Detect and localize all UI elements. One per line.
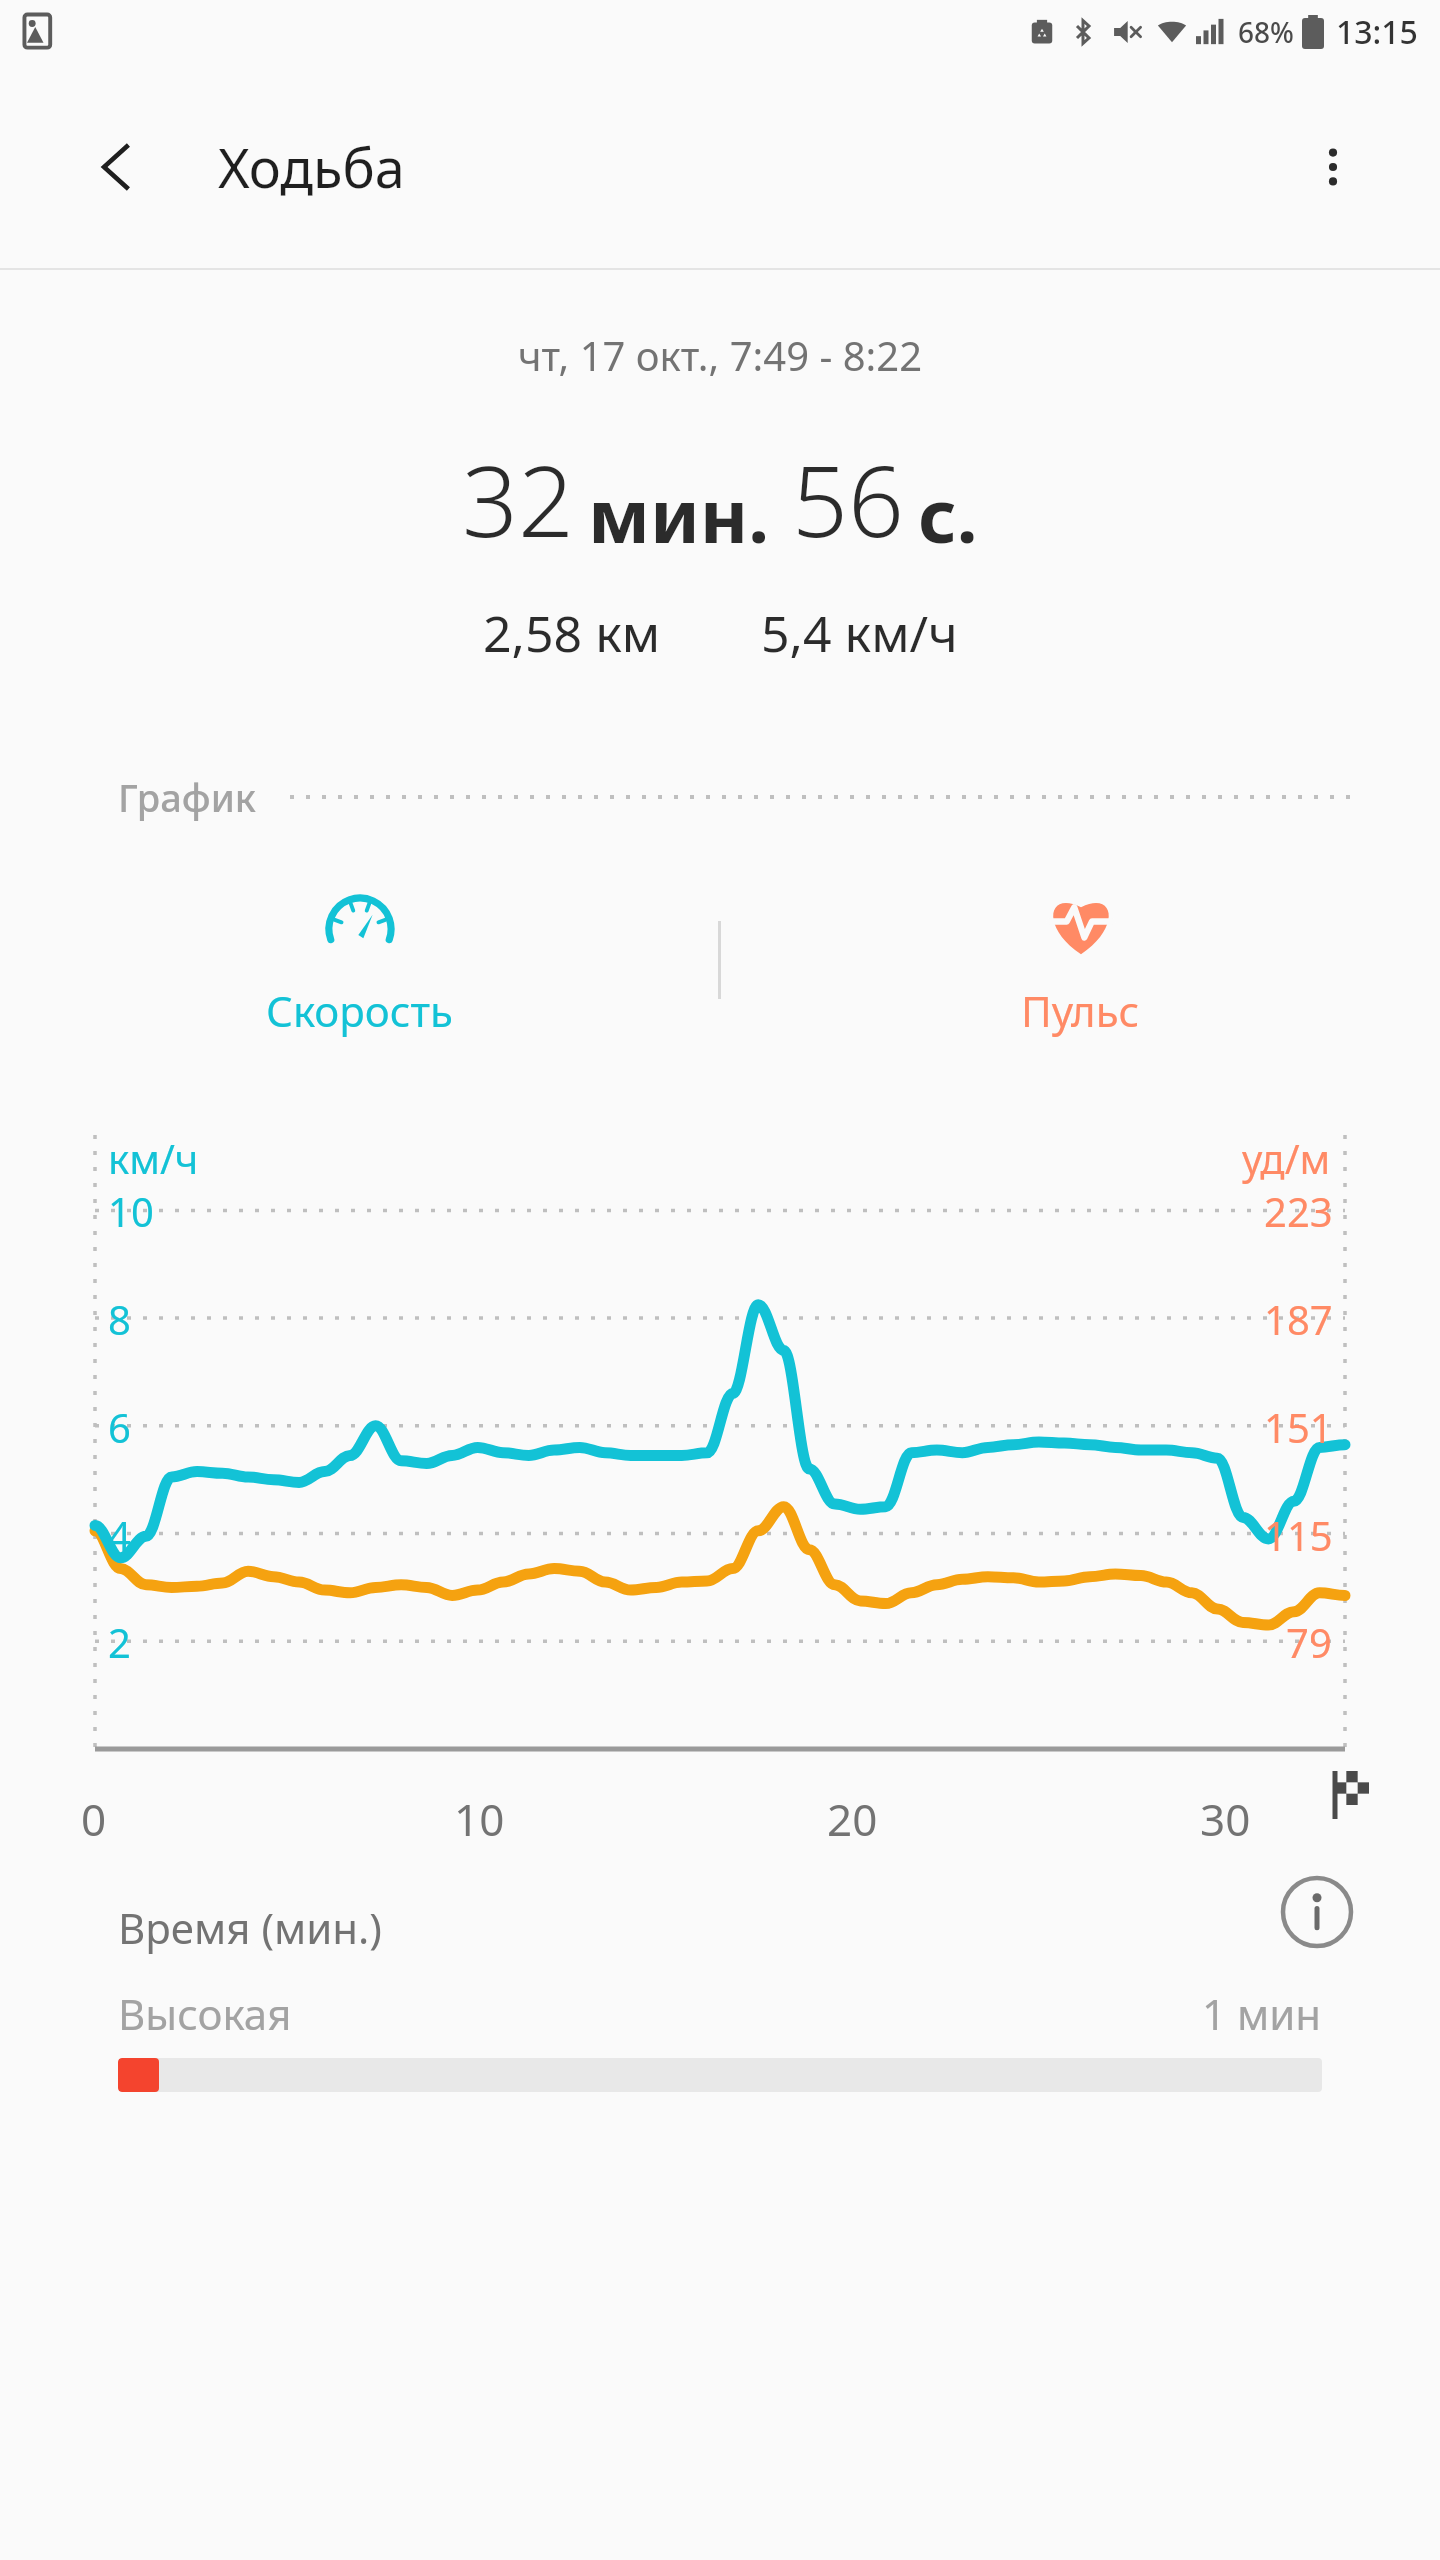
button[interactable]: Скорость bbox=[0, 855, 718, 1065]
staticText: 68% bbox=[1238, 13, 1294, 51]
staticText: 79 bbox=[1286, 1615, 1332, 1669]
staticText: Скорость bbox=[266, 982, 453, 1039]
staticText: 115 bbox=[1264, 1508, 1333, 1562]
staticText: 223 bbox=[1264, 1184, 1333, 1238]
staticText: 6 bbox=[108, 1400, 131, 1454]
staticText: 20 bbox=[827, 1789, 878, 1849]
staticText: 10 bbox=[454, 1789, 505, 1849]
staticText: 8 bbox=[108, 1292, 131, 1346]
staticText: График bbox=[118, 771, 256, 823]
staticText: 10 bbox=[108, 1184, 154, 1238]
staticText: Высокая bbox=[118, 1985, 292, 2042]
staticText: мин. bbox=[588, 464, 770, 565]
staticText: Время (мин.) bbox=[118, 1899, 382, 1956]
staticText: 151 bbox=[1264, 1400, 1333, 1454]
button[interactable]: Пульс bbox=[721, 855, 1440, 1065]
button[interactable]: Info bbox=[1276, 1871, 1358, 1953]
staticText: Ходьба bbox=[218, 130, 405, 204]
staticText: 56 bbox=[792, 432, 904, 565]
staticText: с. bbox=[918, 464, 978, 565]
staticText: 1 мин bbox=[1202, 1985, 1322, 2042]
staticText: 0 bbox=[81, 1789, 107, 1849]
staticText: 13:15 bbox=[1336, 10, 1418, 54]
staticText: уд/м bbox=[1242, 1131, 1331, 1185]
button[interactable]: Back bbox=[74, 124, 160, 210]
staticText: 32 bbox=[462, 432, 574, 565]
staticText: 2 bbox=[108, 1615, 131, 1669]
staticText: 5,4 км/ч bbox=[761, 599, 958, 667]
staticText: км/ч bbox=[108, 1131, 199, 1185]
button[interactable]: More options bbox=[1288, 122, 1378, 212]
staticText: 2,58 км bbox=[483, 599, 661, 667]
staticText: 4 bbox=[108, 1508, 131, 1562]
staticText: 30 bbox=[1200, 1789, 1251, 1849]
staticText: Пульс bbox=[1021, 982, 1140, 1039]
staticText: 187 bbox=[1264, 1292, 1333, 1346]
staticText: чт, 17 окт., 7:49 - 8:22 bbox=[518, 328, 923, 382]
